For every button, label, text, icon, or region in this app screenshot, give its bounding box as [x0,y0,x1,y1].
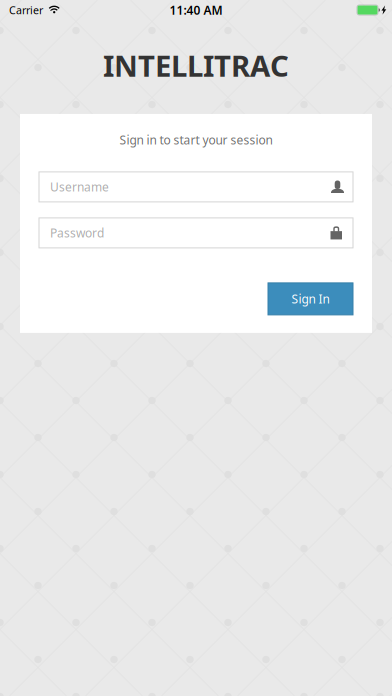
staticText: 11:40 AM [169,2,222,18]
button[interactable]: Sign In [268,283,353,315]
staticText: INTELLITRAC [103,46,289,85]
staticText: Sign in to start your session [119,132,272,148]
staticText: Carrier [9,3,43,17]
button[interactable]: Username [39,172,353,202]
button[interactable]: Password [39,218,353,248]
staticText: Username [50,179,109,195]
staticText: Password [50,225,104,241]
staticText: Sign In [291,291,329,307]
